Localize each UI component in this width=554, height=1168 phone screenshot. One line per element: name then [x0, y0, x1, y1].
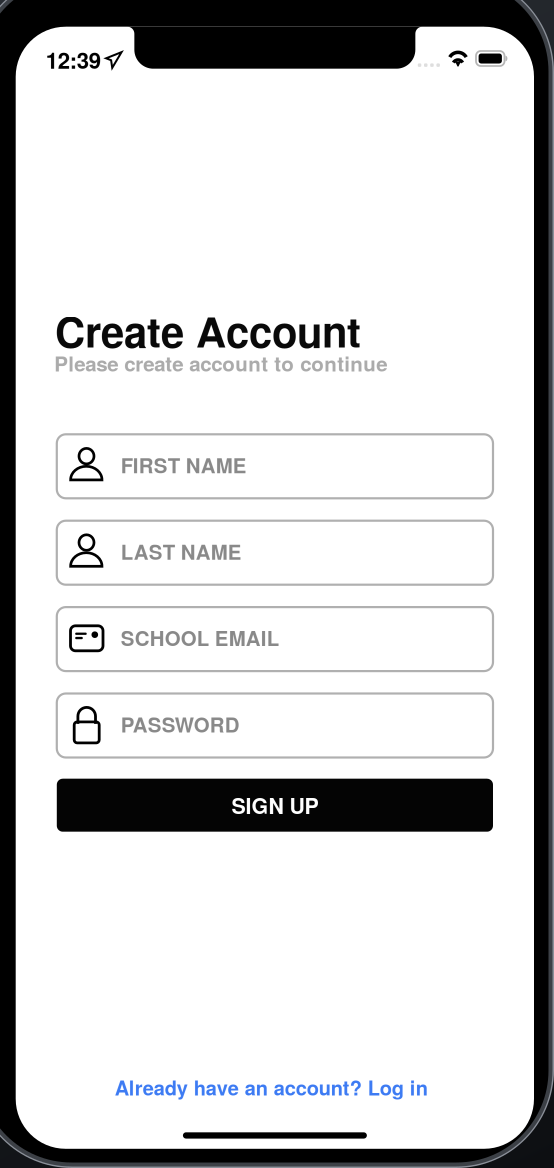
staticText: Already have an account? Log in	[115, 1073, 428, 1101]
staticText: Please create account to continue	[54, 348, 387, 378]
button[interactable]: SCHOOL EMAIL	[57, 607, 493, 671]
button[interactable]: LAST NAME	[57, 521, 493, 585]
button[interactable]: Already have an account? Log in	[106, 1070, 436, 1104]
button[interactable]: PASSWORD	[57, 693, 493, 757]
button[interactable]: SIGN UP	[57, 779, 493, 832]
staticText: SIGN UP	[231, 790, 318, 820]
staticText: SCHOOL EMAIL	[121, 623, 279, 652]
staticText: LAST NAME	[121, 537, 242, 566]
staticText: PASSWORD	[121, 709, 240, 739]
staticText: Create Account	[55, 301, 361, 360]
staticText: 12:39	[46, 44, 101, 75]
button[interactable]: FIRST NAME	[57, 434, 493, 498]
staticText: FIRST NAME	[121, 450, 247, 479]
